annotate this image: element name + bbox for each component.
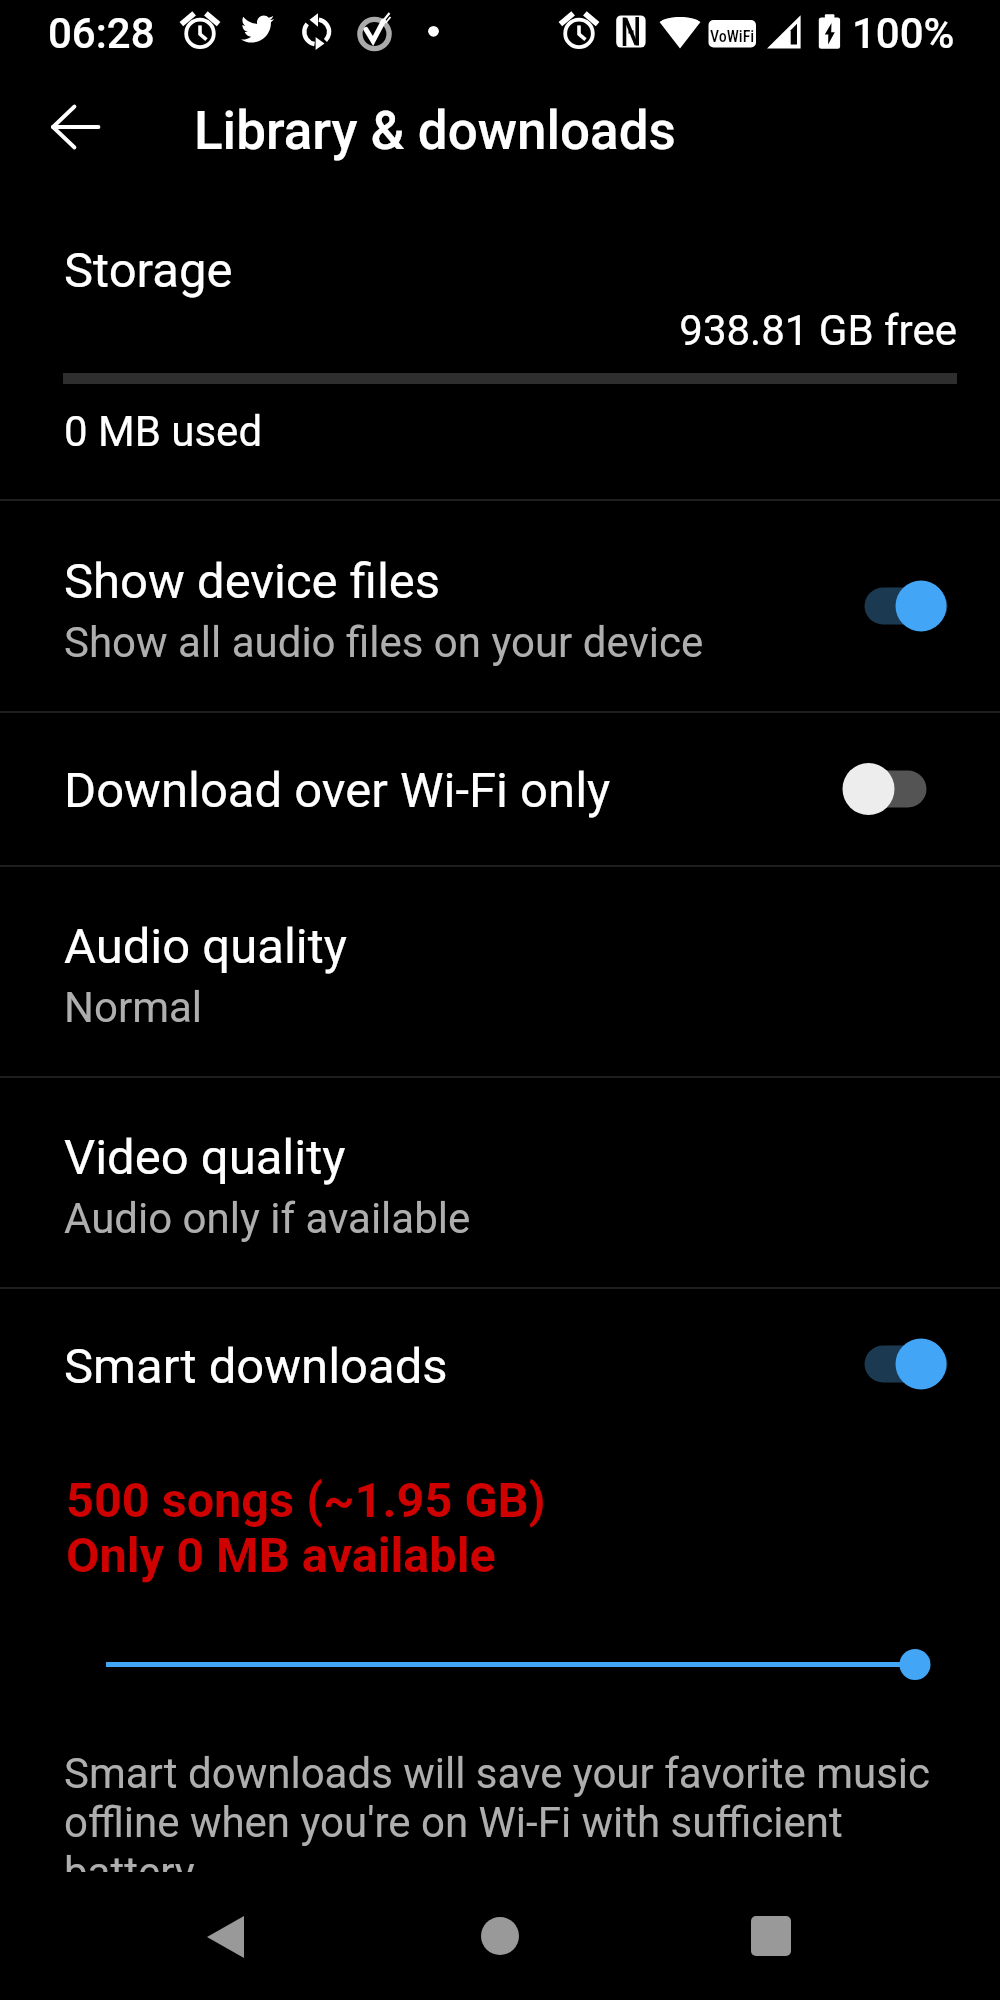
staticText: Only 0 MB available bbox=[66, 1527, 496, 1584]
staticText: Normal bbox=[64, 983, 203, 1032]
staticText: Smart downloads bbox=[64, 1338, 448, 1395]
staticText: Smart downloads will save your favorite … bbox=[64, 1749, 954, 1872]
staticText: Show device files bbox=[64, 553, 441, 610]
button[interactable] bbox=[0, 867, 1000, 1077]
staticText: 938.81 GB free bbox=[0, 306, 957, 355]
staticText: VoWiFi bbox=[710, 27, 755, 46]
staticText: Audio only if available bbox=[64, 1194, 471, 1243]
button[interactable] bbox=[0, 1078, 1000, 1288]
staticText: Video quality bbox=[64, 1129, 346, 1186]
button[interactable] bbox=[0, 713, 1000, 866]
staticText: 500 songs (~1.95 GB) bbox=[66, 1472, 546, 1529]
button[interactable]: Home bbox=[440, 1877, 560, 1997]
staticText: 100% bbox=[852, 9, 955, 58]
button[interactable] bbox=[0, 1289, 1000, 1439]
staticText: Library & downloads bbox=[194, 100, 676, 162]
staticText: Download over Wi-Fi only bbox=[64, 762, 611, 819]
button[interactable] bbox=[0, 501, 1000, 712]
button[interactable]: Recents bbox=[711, 1877, 831, 1997]
staticText: Audio quality bbox=[64, 918, 347, 975]
staticText: 06:28 bbox=[48, 9, 155, 58]
button[interactable]: Back bbox=[168, 1877, 288, 1997]
staticText: Show all audio files on your device bbox=[64, 618, 704, 667]
button[interactable]: Back bbox=[28, 79, 124, 175]
button[interactable] bbox=[0, 190, 1000, 500]
staticText: Storage bbox=[64, 242, 233, 299]
staticText: 0 MB used bbox=[64, 407, 263, 456]
